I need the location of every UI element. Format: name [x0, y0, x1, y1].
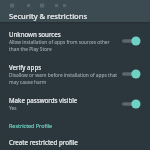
other: Toggle [122, 35, 142, 47]
button[interactable]: Verify apps [0, 61, 150, 87]
button[interactable]: Unknown sources [0, 28, 150, 54]
staticText: Create restricted profile [9, 138, 78, 146]
staticText: Allow installation of apps from sources … [9, 39, 118, 52]
staticText: Verify apps [9, 63, 42, 71]
staticText: Disallow or warn before installation of … [9, 72, 118, 85]
staticText: Yes [9, 105, 17, 112]
button[interactable]: Security & restrictions [0, 9, 150, 22]
other: Toggle [122, 68, 142, 80]
button[interactable]: Create restricted profile [0, 137, 150, 150]
staticText: Restricted Profile [9, 122, 53, 129]
staticText: Unknown sources [9, 30, 61, 38]
button[interactable]: Make passwords visible [0, 94, 150, 114]
staticText: Make passwords visible [9, 96, 78, 104]
other: Toggle [122, 98, 142, 110]
staticText: Security & restrictions [9, 11, 88, 21]
